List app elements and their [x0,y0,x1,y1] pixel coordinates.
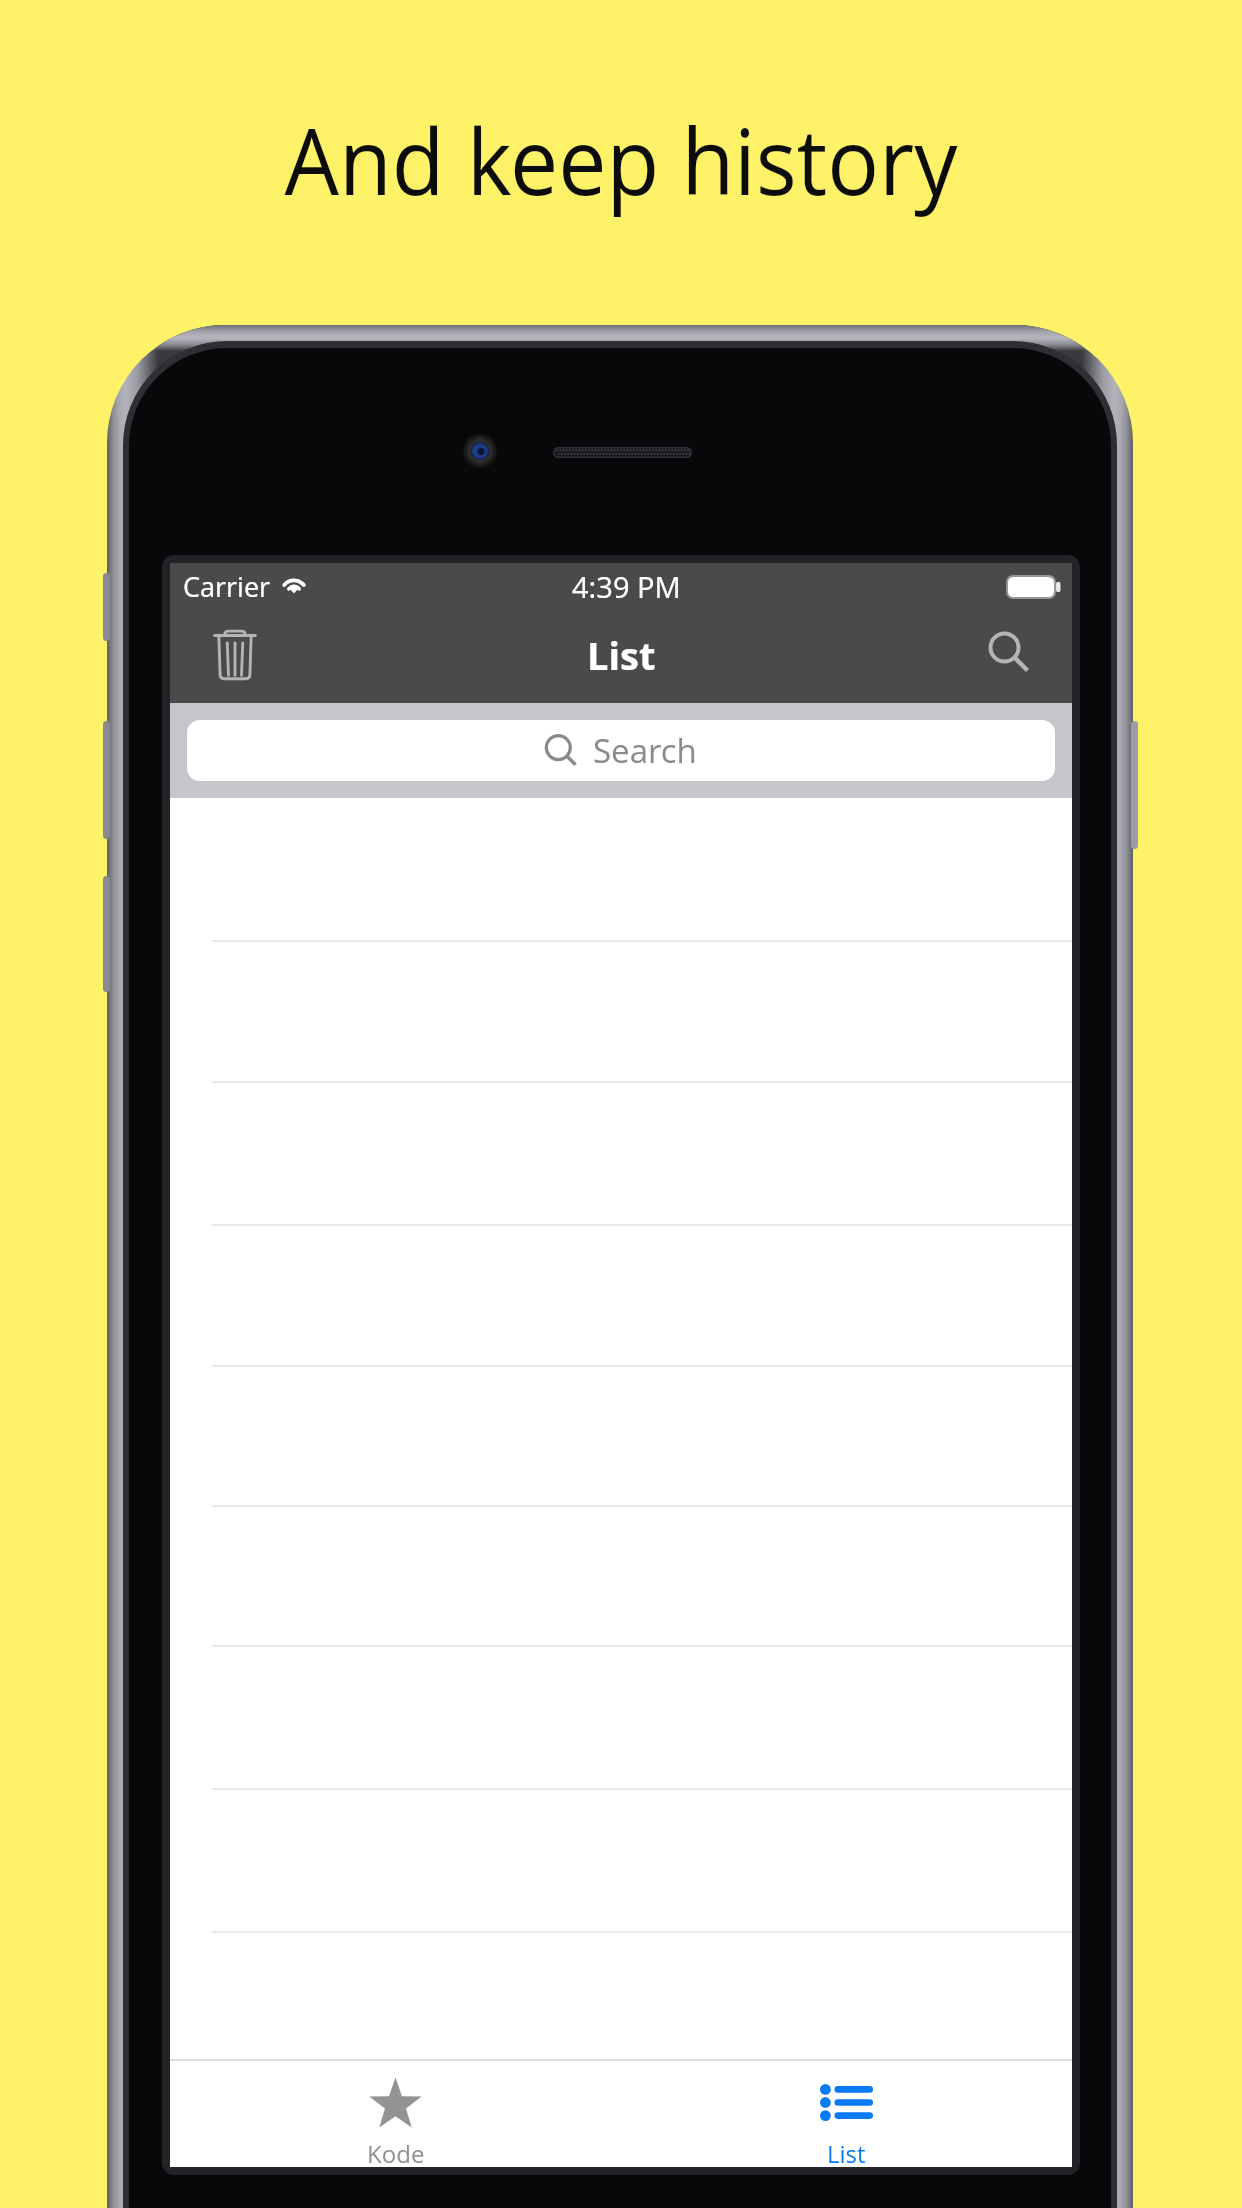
staticText: Kode [367,2137,425,2170]
button[interactable]: Delete all [203,619,267,693]
staticText: Search [593,728,697,773]
staticText: Carrier [183,568,271,605]
staticText: List [827,2137,866,2170]
button[interactable] [170,1933,1072,2060]
button[interactable]: List [621,2059,1072,2167]
button[interactable]: Search [187,720,1055,781]
button[interactable]: Kode [170,2059,621,2167]
staticText: List [587,629,656,681]
button[interactable]: Search [980,618,1044,692]
staticText: 4:39 PM [572,567,681,606]
staticText: And keep history [284,97,958,222]
